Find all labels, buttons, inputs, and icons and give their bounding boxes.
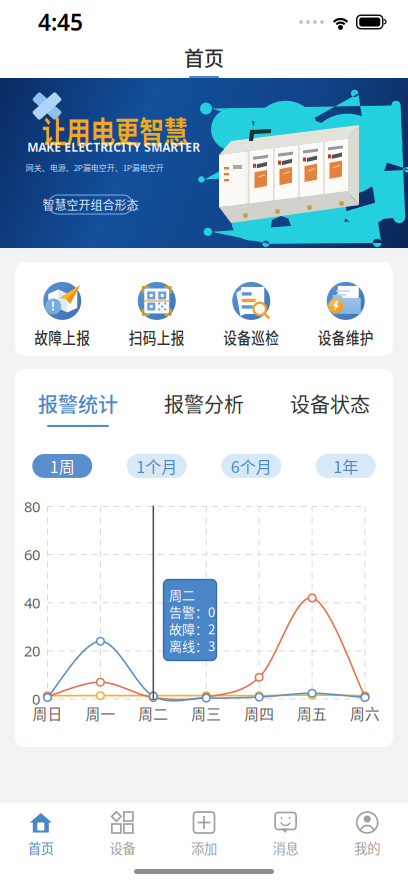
staticText: 消息 (273, 838, 299, 857)
staticText: 6个月 (231, 454, 272, 478)
staticText: 40 (24, 593, 40, 612)
staticText: 报警统计 (38, 389, 118, 418)
staticText: 4:45 (38, 7, 83, 37)
staticText: 60 (24, 545, 40, 564)
staticText: 故障上报 (28, 325, 96, 349)
button[interactable]: 消息 (245, 811, 326, 857)
button[interactable]: 报警分析 (141, 389, 267, 427)
staticText: 20 (24, 641, 40, 661)
staticText: 周四 (244, 703, 274, 724)
staticText: 扫码上报 (123, 325, 191, 349)
staticText: 周一 (85, 703, 115, 724)
staticText: 我的 (354, 838, 380, 857)
staticText: 周日 (32, 703, 62, 724)
staticText: 离线：3 (169, 636, 215, 655)
staticText: 0 (32, 689, 40, 709)
staticText: 首页 (28, 838, 54, 857)
staticText: 1个月 (136, 454, 177, 478)
staticText: 报警分析 (164, 389, 244, 418)
staticText: 周六 (350, 703, 380, 724)
button[interactable]: 1周 (15, 454, 109, 478)
button[interactable]: 1个月 (109, 454, 204, 478)
staticText: 设备维护 (312, 325, 380, 349)
staticText: 设备 (109, 838, 135, 857)
staticText: 智慧空开组合形态 (42, 196, 138, 213)
button[interactable]: 6个月 (204, 454, 298, 478)
button[interactable]: 故障上报 (15, 269, 109, 349)
button[interactable]: 我的 (326, 811, 408, 857)
button[interactable]: 首页 (0, 811, 82, 857)
button[interactable]: 报警统计 (15, 389, 141, 427)
button[interactable]: 扫码上报 (109, 269, 204, 349)
staticText: 添加 (191, 838, 217, 857)
staticText: 故障：2 (169, 619, 215, 638)
staticText: 80 (24, 497, 40, 516)
button[interactable]: 设备维护 (298, 269, 393, 349)
staticText: 告警：0 (169, 602, 215, 621)
button[interactable]: 设备 (82, 811, 163, 857)
button[interactable]: 设备状态 (267, 389, 393, 427)
staticText: 让用电更智慧 (28, 109, 202, 151)
staticText: 设备状态 (290, 389, 370, 418)
staticText: 1周 (50, 454, 75, 478)
button[interactable]: 添加 (163, 811, 245, 857)
staticText: 周五 (297, 703, 327, 724)
button[interactable]: 智慧空开组合形态 (48, 195, 132, 214)
button[interactable]: 1年 (298, 454, 393, 478)
staticText: 首页 (184, 43, 224, 72)
staticText: 周二 (169, 585, 195, 604)
staticText: 周二 (138, 703, 168, 724)
staticText: 周三 (191, 703, 221, 724)
staticText: MAKE ELECTRICITY SMARTER (27, 139, 200, 155)
staticText: 网关、电源、2P漏电空开、1P漏电空开 (26, 162, 164, 173)
button[interactable]: 设备巡检 (204, 269, 298, 349)
staticText: 设备巡检 (217, 325, 285, 349)
staticText: 1年 (333, 454, 358, 478)
